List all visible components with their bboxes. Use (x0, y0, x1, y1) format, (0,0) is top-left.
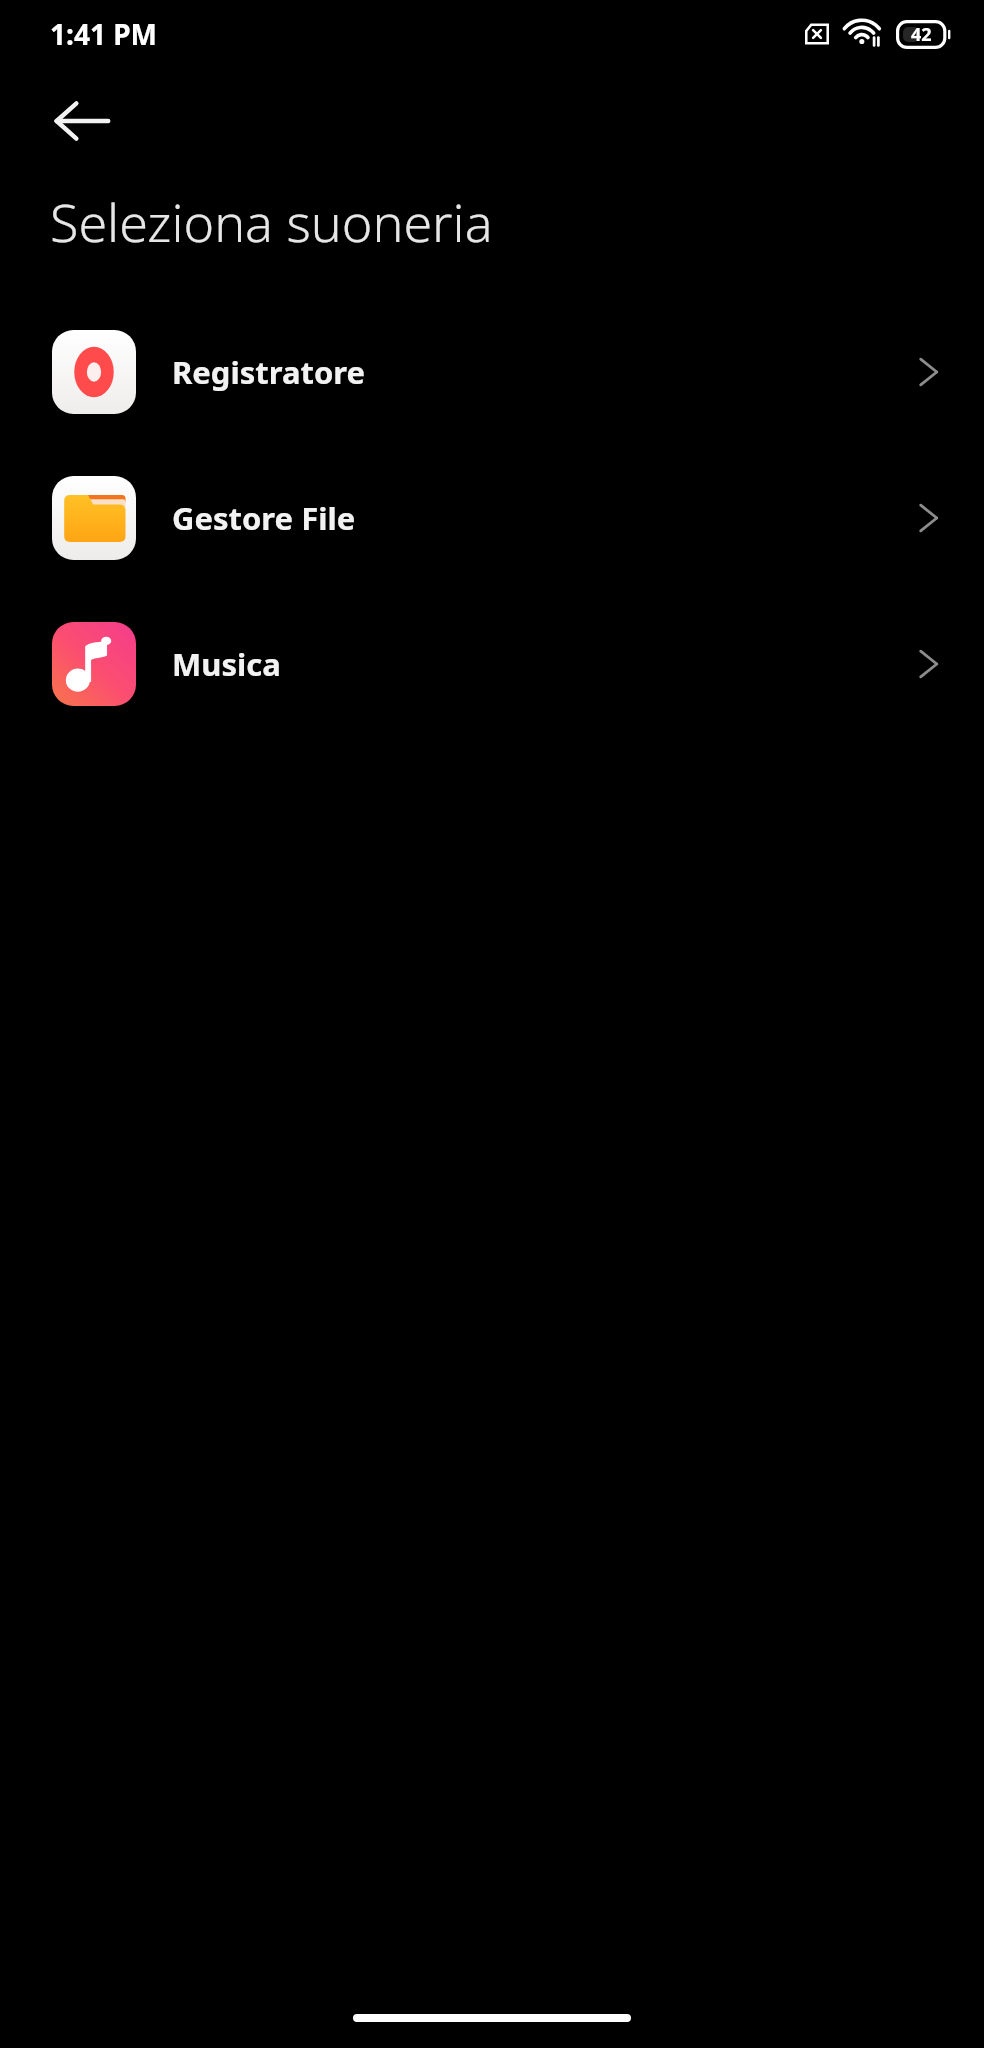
staticText: Musica (172, 643, 916, 685)
staticText: Seleziona suoneria (50, 186, 493, 257)
staticText: 42 (911, 22, 932, 47)
button[interactable]: Musica (0, 591, 984, 737)
staticText: Gestore File (172, 497, 916, 539)
staticText: 1:41 PM (50, 15, 157, 53)
button[interactable]: Gestore File (0, 445, 984, 591)
button[interactable]: Registratore (0, 299, 984, 445)
staticText: Registratore (172, 351, 916, 393)
button[interactable]: Back (30, 84, 134, 158)
